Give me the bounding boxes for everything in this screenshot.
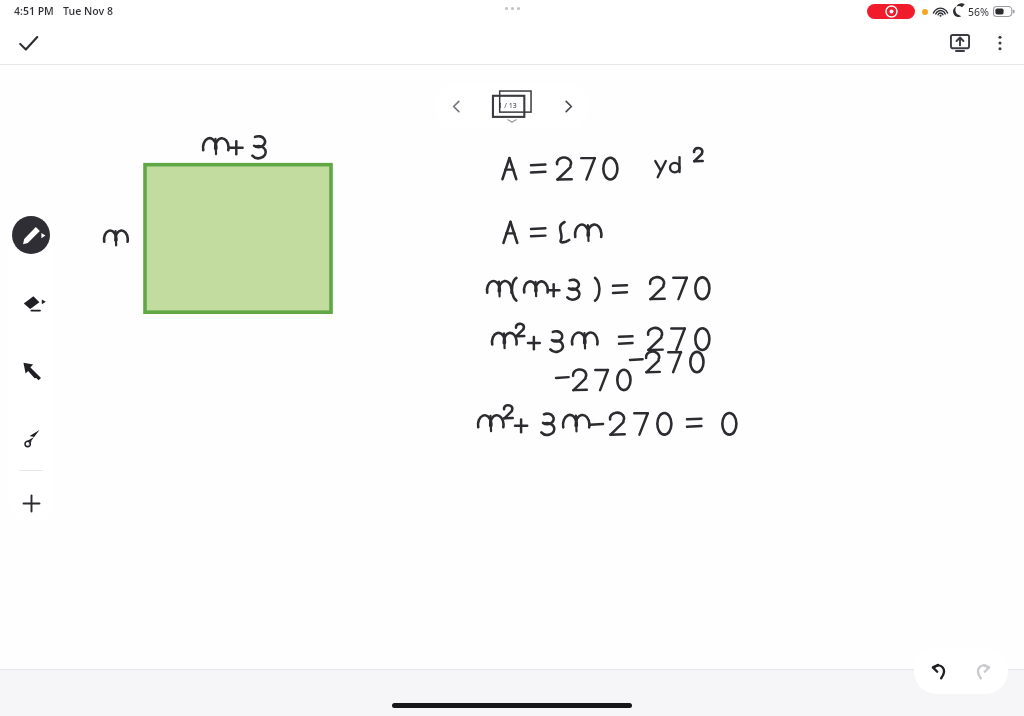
button[interactable]: More options xyxy=(980,23,1020,63)
button[interactable]: Redo xyxy=(963,651,1003,691)
staticText: Tue Nov 8 xyxy=(63,4,114,18)
button[interactable]: Pen xyxy=(12,216,50,254)
button[interactable]: Present to screen xyxy=(940,23,980,63)
button[interactable]: Next page xyxy=(548,86,588,126)
button[interactable]: Laser pointer xyxy=(12,418,50,456)
button[interactable]: Undo xyxy=(919,651,959,691)
button[interactable]: Eraser xyxy=(12,284,50,322)
staticText: 56% xyxy=(968,5,989,19)
button[interactable]: Add tool xyxy=(12,484,50,522)
staticText: 1 / 13 xyxy=(498,101,517,111)
button[interactable]: Pages 1 of 13 xyxy=(484,89,540,123)
button[interactable]: Done xyxy=(8,23,48,63)
button[interactable]: Previous page xyxy=(436,86,476,126)
button[interactable]: Select xyxy=(12,351,50,389)
staticText: 4:51 PM xyxy=(14,4,54,18)
